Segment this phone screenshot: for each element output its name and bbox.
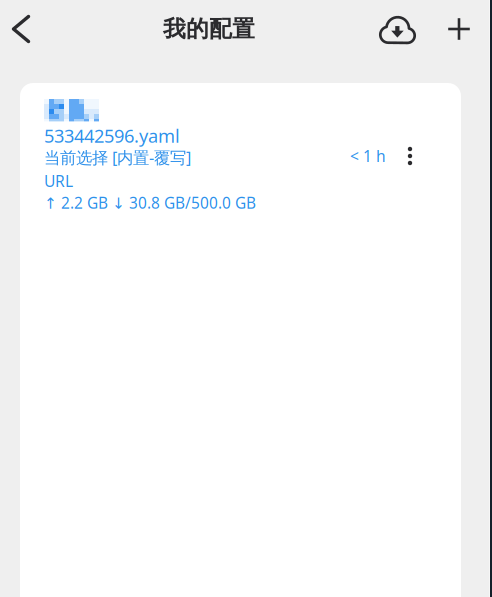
button[interactable]: Add configuration [432, 0, 486, 58]
button[interactable]: Download configuration [362, 0, 432, 60]
staticText: ↑ 2.2 GB ↓ 30.8 GB/500.0 GB [44, 192, 256, 213]
staticText: 533442596.yaml [44, 123, 180, 148]
staticText: URL [44, 170, 73, 191]
staticText: 当前选择 [内置-覆写] [44, 146, 191, 168]
button[interactable]: 533442596.yaml [20, 83, 461, 597]
staticText: 我的配置 [163, 15, 255, 43]
button[interactable]: Back [0, 0, 42, 58]
staticText: < 1 h [350, 145, 386, 167]
button[interactable]: More options [393, 140, 427, 172]
